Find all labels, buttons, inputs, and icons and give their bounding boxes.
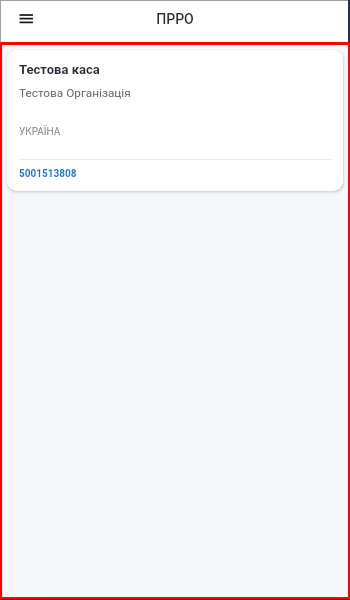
staticText: Тестова Організація — [19, 86, 131, 100]
staticText: Тестова каса — [19, 62, 100, 77]
button[interactable]: Open navigation menu — [7, 2, 35, 30]
button[interactable]: Тестова каса — [7, 50, 343, 191]
staticText: ПРРО — [156, 11, 194, 27]
staticText: 5001513808 — [19, 168, 77, 180]
staticText: УКРАЇНА — [19, 126, 61, 138]
